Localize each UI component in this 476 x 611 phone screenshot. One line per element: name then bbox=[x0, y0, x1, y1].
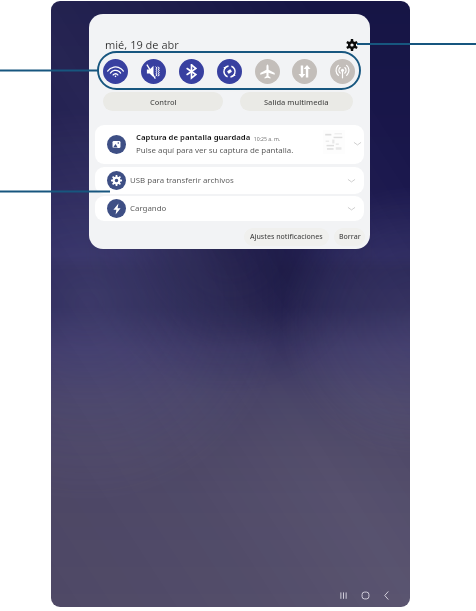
staticText: Captura de pantalla guardada bbox=[136, 132, 251, 142]
staticText: mié, 19 de abr bbox=[105, 37, 179, 52]
staticText: Control bbox=[150, 97, 177, 107]
button[interactable]: Auto rotate bbox=[213, 55, 245, 87]
button[interactable]: Back bbox=[375, 584, 397, 606]
staticText: 10:25 a. m. bbox=[251, 135, 281, 142]
button[interactable]: Mobile data bbox=[288, 55, 320, 87]
staticText: Borrar bbox=[339, 232, 361, 242]
staticText: Pulse aquí para ver su captura de pantal… bbox=[136, 145, 294, 156]
staticText: Salida multimedia bbox=[264, 97, 329, 107]
staticText: Ajustes notificaciones bbox=[250, 232, 323, 242]
button[interactable]: Wi-Fi bbox=[99, 55, 131, 87]
button[interactable]: Home bbox=[354, 584, 376, 606]
button[interactable]: Recents bbox=[332, 584, 354, 606]
button[interactable]: Control bbox=[103, 92, 223, 111]
button[interactable]: Borrar bbox=[334, 228, 365, 246]
staticText: USB para transferir archivos bbox=[130, 175, 234, 186]
button[interactable]: Salida multimedia bbox=[240, 92, 353, 111]
button[interactable]: Airplane mode bbox=[251, 55, 283, 87]
button[interactable]: Quick settings bbox=[342, 35, 362, 55]
staticText: Cargando bbox=[130, 203, 167, 214]
button[interactable]: Hotspot bbox=[326, 55, 358, 87]
button[interactable]: Bluetooth bbox=[175, 55, 207, 87]
button[interactable]: Ajustes notificaciones bbox=[244, 228, 329, 246]
button[interactable]: Cargando bbox=[95, 196, 364, 221]
button[interactable]: USB para transferir archivos bbox=[95, 167, 364, 194]
button[interactable]: Captura de pantalla guardada bbox=[95, 125, 364, 164]
button[interactable]: Sound off bbox=[137, 55, 169, 87]
